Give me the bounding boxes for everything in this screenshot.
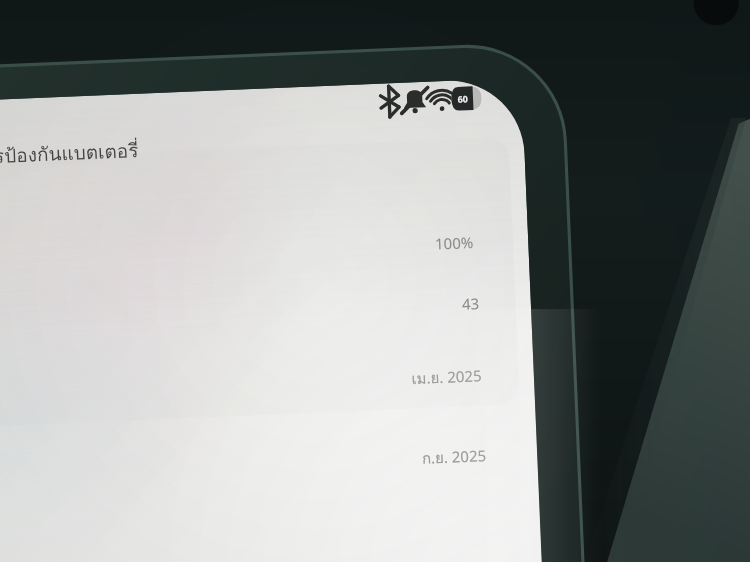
- button[interactable]: Battery protection settings photo: [0, 0, 750, 562]
